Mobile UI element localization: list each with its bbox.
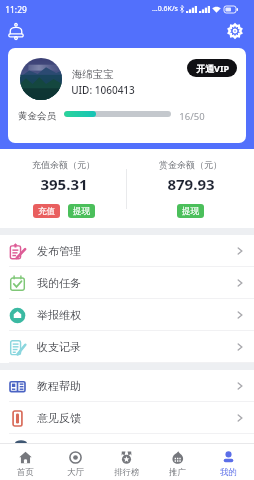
staticText: 充值余额（元） [32,159,95,170]
staticText: 黄金会员 [18,110,56,122]
button[interactable]: 教程帮助 [0,370,254,402]
staticText: 排行榜 [114,467,140,478]
staticText: 395.31 [40,174,88,194]
staticText: 11:29 [5,4,27,16]
button[interactable]: 开通VIP [187,59,237,77]
button[interactable]: 举报维权 [0,299,254,331]
staticText: 我的任务 [37,276,81,290]
button[interactable]: 我的任务 [0,267,254,299]
button[interactable]: 推广 [152,444,203,480]
staticText: 提现 [182,206,199,217]
staticText: 教程帮助 [37,379,81,393]
staticText: 收支记录 [37,340,81,354]
staticText: 我的 [220,467,237,478]
button[interactable]: 我的 [203,444,254,480]
staticText: 赏金余额（元） [159,159,222,170]
staticText: 推广 [169,467,186,478]
staticText: 提现 [73,206,90,217]
staticText: 海绵宝宝 [72,68,114,81]
staticText: ...0.6K/s [152,4,178,14]
button[interactable]: 大厅 [50,444,101,480]
button[interactable]: 排行榜 [101,444,152,480]
button[interactable]: 提现 [177,204,204,218]
staticText: 充值 [38,206,55,217]
button[interactable]: Settings [227,23,243,39]
button[interactable]: 提现 [68,204,95,218]
button[interactable]: 收支记录 [0,331,254,363]
staticText: 举报维权 [37,308,81,322]
button[interactable]: 发布管理 [0,235,254,267]
staticText: 大厅 [67,467,84,478]
button[interactable]: 首页 [0,444,50,480]
staticText: 首页 [17,467,34,478]
staticText: 开通VIP [196,62,229,74]
button[interactable]: Notifications [8,23,24,41]
button[interactable]: 意见反馈 [0,402,254,434]
button[interactable]: Scroll to top [15,439,27,443]
staticText: UID: 1060413 [71,83,135,97]
staticText: 16/50 [179,110,205,123]
staticText: 879.93 [167,174,215,194]
staticText: 意见反馈 [37,411,81,425]
button[interactable]: 充值 [33,204,60,218]
button[interactable]: Avatar [20,58,62,100]
staticText: 发布管理 [37,244,81,258]
